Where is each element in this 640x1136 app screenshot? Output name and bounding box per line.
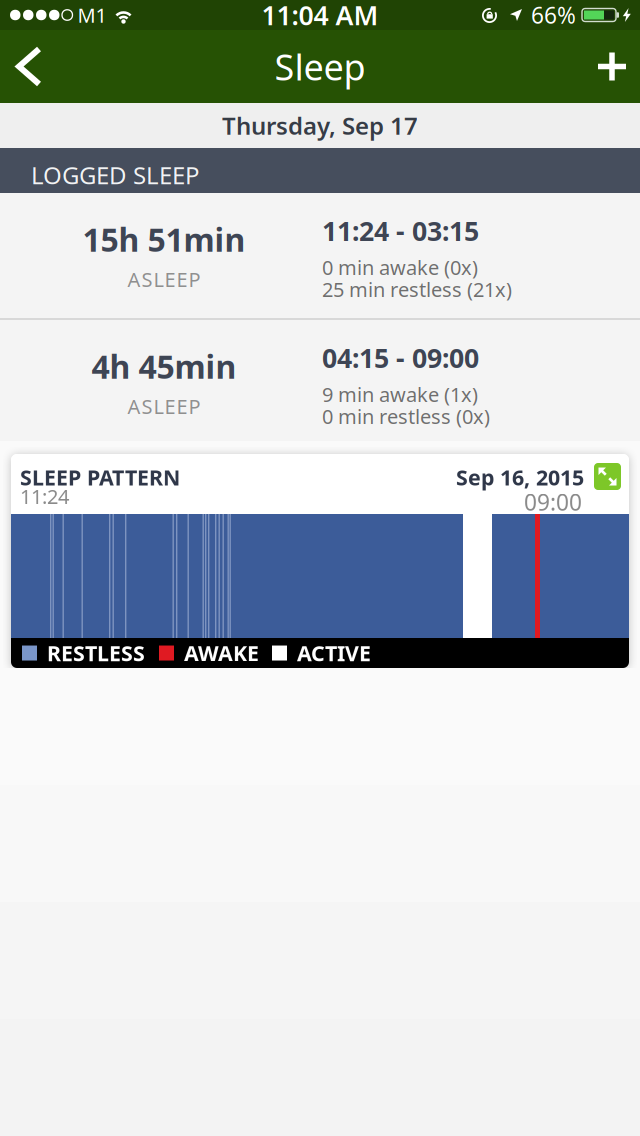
staticText: ASLEEP — [127, 393, 200, 420]
staticText: 0 min restless (0x) — [322, 403, 490, 430]
staticText: AWAKE — [184, 639, 259, 667]
staticText: ASLEEP — [127, 266, 200, 293]
staticText: 0 min awake (0x) — [322, 254, 478, 281]
staticText: Sleep — [274, 43, 365, 90]
staticText: 11:24 - 03:15 — [322, 213, 479, 248]
button[interactable]: Back — [0, 41, 55, 92]
staticText: Sep 16, 2015 — [456, 463, 584, 491]
staticText: ACTIVE — [297, 639, 371, 667]
staticText: 15h 51min — [82, 218, 245, 260]
staticText: 11:24 — [20, 483, 69, 510]
staticText: RESTLESS — [47, 639, 145, 667]
staticText: SLEEP PATTERN — [20, 463, 180, 491]
staticText: 9 min awake (1x) — [322, 381, 478, 408]
staticText: 25 min restless (21x) — [322, 276, 512, 303]
staticText: 66% — [531, 0, 576, 30]
staticText: 09:00 — [524, 487, 582, 517]
staticText: LOGGED SLEEP — [31, 159, 200, 191]
button[interactable]: 15h 51min — [0, 193, 640, 318]
staticText: Thursday, Sep 17 — [222, 110, 418, 141]
staticText: 04:15 - 09:00 — [322, 340, 479, 375]
staticText: 11:04 AM — [261, 0, 378, 33]
button[interactable]: Expand sleep pattern — [594, 463, 621, 490]
staticText: M1 — [77, 2, 106, 28]
button[interactable]: 4h 45min — [0, 320, 640, 441]
staticText: 4h 45min — [91, 345, 236, 387]
button[interactable]: Add sleep log — [590, 41, 640, 92]
